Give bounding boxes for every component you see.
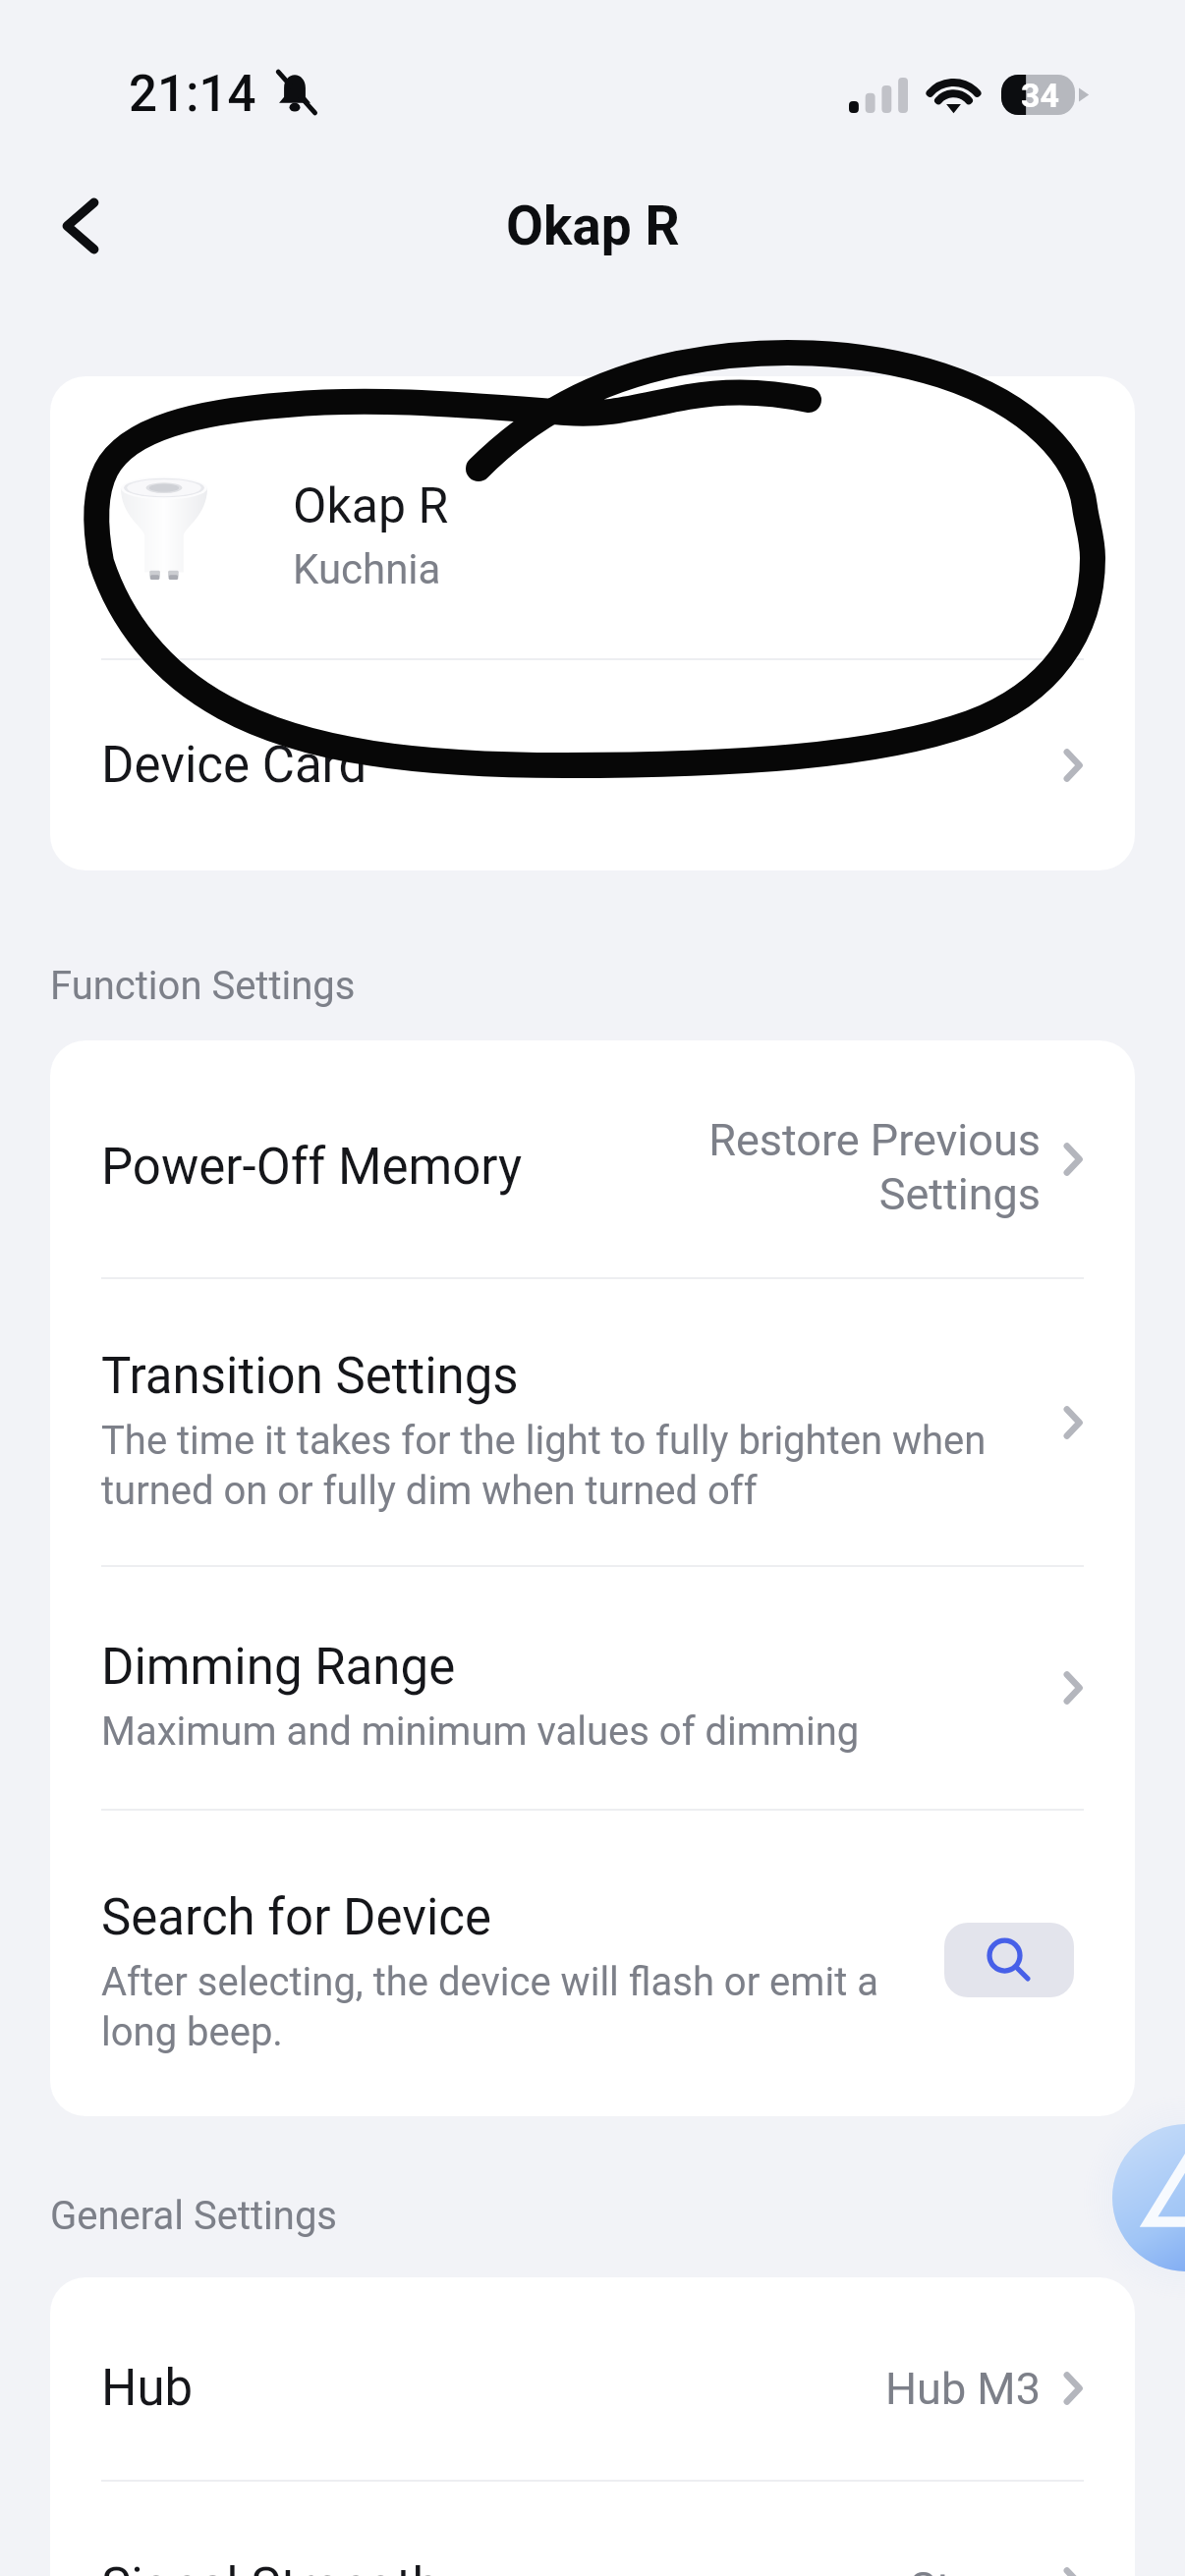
staticText: Kuchnia xyxy=(293,545,441,593)
button[interactable]: Search for device xyxy=(944,1923,1074,1997)
button[interactable]: Signal Strength xyxy=(50,2482,1135,2576)
staticText: Okap R xyxy=(293,477,449,535)
staticText: Okap R xyxy=(506,195,680,257)
staticText: Restore Previous Settings xyxy=(677,1114,1041,1220)
staticText: Power-Off Memory xyxy=(101,1138,523,1197)
button[interactable]: Transition Settings xyxy=(50,1279,1135,1565)
staticText: After selecting, the device will flash o… xyxy=(101,1959,917,2055)
button[interactable]: Device Card xyxy=(50,660,1135,870)
button[interactable]: Okap R xyxy=(50,376,1135,658)
staticText: The time it takes for the light to fully… xyxy=(101,1418,1039,1514)
button[interactable]: Search for Device xyxy=(50,1811,1135,2116)
button[interactable]: Assistant xyxy=(1112,2124,1185,2271)
staticText: Hub xyxy=(101,2359,194,2418)
staticText: Signal Strength xyxy=(101,2557,440,2576)
staticText: 34 xyxy=(1021,76,1060,115)
button[interactable]: Dimming Range xyxy=(50,1567,1135,1809)
staticText: Function Settings xyxy=(50,963,356,1009)
staticText: Dimming Range xyxy=(101,1638,456,1697)
staticText: Strong xyxy=(910,2562,1041,2576)
staticText: Search for Device xyxy=(101,1888,492,1947)
button[interactable]: Back xyxy=(36,182,125,270)
staticText: Transition Settings xyxy=(101,1347,519,1406)
staticText: Device Card xyxy=(101,736,367,795)
button[interactable]: Power-Off Memory xyxy=(50,1040,1135,1277)
button[interactable]: Hub xyxy=(50,2277,1135,2480)
staticText: 21:14 xyxy=(129,65,256,124)
staticText: Hub M3 xyxy=(885,2363,1041,2415)
staticText: General Settings xyxy=(50,2193,337,2239)
staticText: Maximum and minimum values of dimming xyxy=(101,1708,860,1755)
